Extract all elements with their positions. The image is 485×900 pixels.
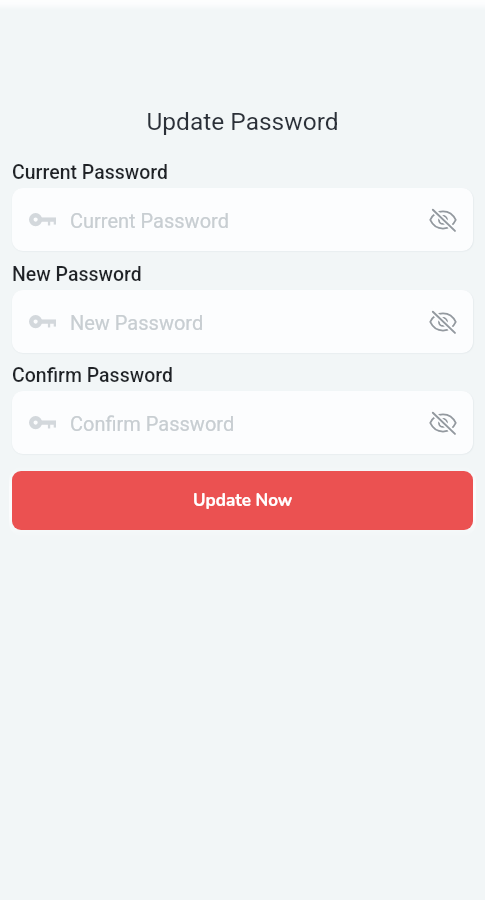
staticText: Current Password xyxy=(70,209,229,232)
staticText: Update Now xyxy=(193,489,293,512)
staticText: Confirm Password xyxy=(70,412,235,435)
button[interactable]: Update Now xyxy=(12,471,473,530)
staticText: Current Password xyxy=(12,161,168,184)
button[interactable]: Confirm Password xyxy=(12,391,473,454)
staticText: New Password xyxy=(70,311,204,334)
staticText: Confirm Password xyxy=(12,364,173,387)
button[interactable]: Current Password xyxy=(12,188,473,251)
button[interactable]: Show password xyxy=(421,401,465,445)
button[interactable]: Show password xyxy=(421,198,465,242)
button[interactable]: New Password xyxy=(12,290,473,353)
staticText: New Password xyxy=(12,263,142,286)
button[interactable]: Show password xyxy=(421,300,465,344)
staticText: Update Password xyxy=(0,107,485,136)
